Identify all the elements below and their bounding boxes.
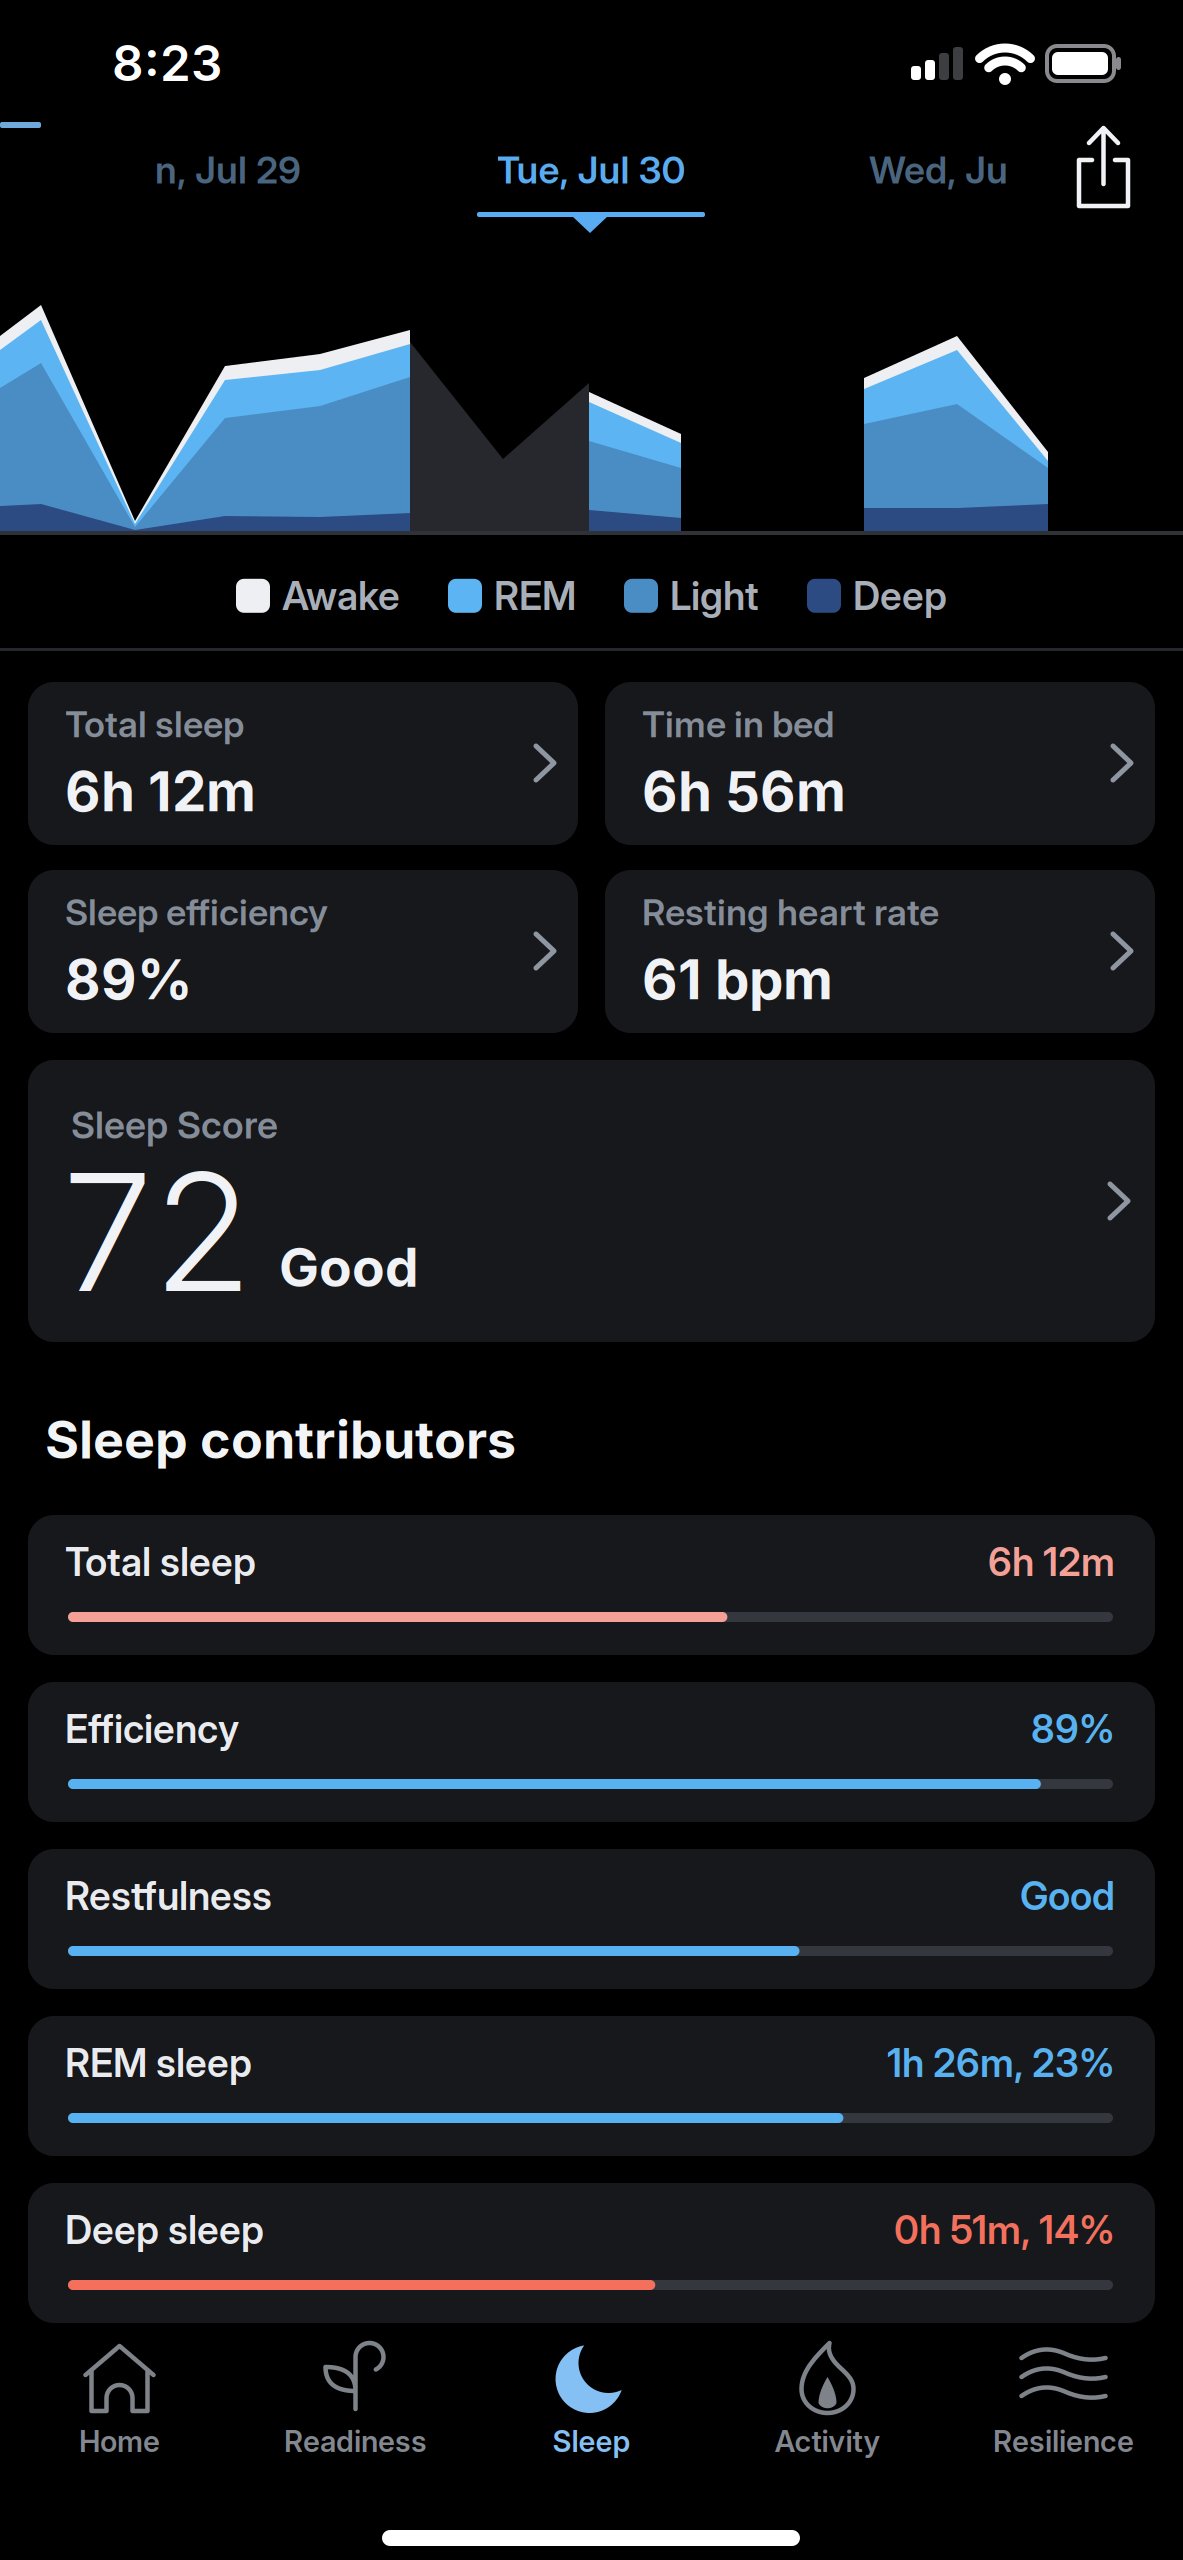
button[interactable]: Activity	[709, 2341, 945, 2459]
staticText: Light	[670, 573, 759, 619]
button[interactable]: Home	[1, 2341, 237, 2459]
button[interactable]: Total sleep	[28, 682, 578, 845]
staticText: 6h 56m	[642, 759, 846, 823]
staticText: Sleep Score	[71, 1103, 278, 1147]
button[interactable]: Wed, Ju	[869, 148, 1008, 192]
staticText: REM sleep	[65, 2040, 252, 2086]
staticText: Time in bed	[642, 703, 834, 745]
staticText: 1h 26m, 23%	[887, 2040, 1115, 2086]
staticText: 72	[62, 1136, 253, 1328]
staticText: 6h 12m	[65, 759, 256, 823]
staticText: Good	[279, 1236, 419, 1299]
button[interactable]: Restfulness	[28, 1849, 1155, 1989]
staticText: 8:23	[112, 34, 222, 92]
staticText: Deep sleep	[65, 2207, 264, 2253]
staticText: Wed, Ju	[869, 148, 1008, 192]
staticText: Resting heart rate	[642, 891, 939, 933]
staticText: 6h 12m	[988, 1539, 1115, 1585]
staticText: Sleep efficiency	[65, 891, 328, 933]
button[interactable]: Deep sleep	[28, 2183, 1155, 2323]
button[interactable]: Sleep efficiency	[28, 870, 578, 1033]
staticText: Resilience	[993, 2424, 1134, 2459]
staticText: 89%	[1031, 1706, 1115, 1752]
staticText: 89%	[65, 947, 193, 1011]
button[interactable]: Resilience	[945, 2341, 1181, 2459]
button[interactable]: Sleep	[473, 2341, 709, 2459]
button[interactable]: n, Jul 29	[68, 148, 388, 192]
staticText: Total sleep	[65, 1539, 256, 1585]
staticText: Efficiency	[65, 1706, 239, 1752]
staticText: n, Jul 29	[155, 148, 301, 192]
button[interactable]: Resting heart rate	[605, 870, 1155, 1033]
button[interactable]	[1073, 124, 1137, 212]
staticText: 0h 51m, 14%	[894, 2207, 1115, 2253]
button[interactable]: Efficiency	[28, 1682, 1155, 1822]
staticText: Activity	[774, 2424, 880, 2459]
button[interactable]: Sleep Score	[28, 1060, 1155, 1342]
staticText: Tue, Jul 30	[496, 148, 685, 192]
staticText: Sleep	[552, 2424, 630, 2459]
button[interactable]: Time in bed	[605, 682, 1155, 845]
button[interactable]: Tue, Jul 30	[431, 148, 751, 192]
staticText: Good	[1020, 1873, 1115, 1919]
button[interactable]: Readiness	[237, 2341, 473, 2459]
staticText: REM	[494, 573, 576, 619]
staticText: Home	[79, 2424, 160, 2459]
staticText: Readiness	[284, 2424, 427, 2459]
staticText: Deep	[853, 573, 947, 619]
staticText: 61 bpm	[642, 947, 833, 1011]
button[interactable]: Total sleep	[28, 1515, 1155, 1655]
staticText: Sleep contributors	[45, 1409, 516, 1470]
button[interactable]: REM sleep	[28, 2016, 1155, 2156]
staticText: Awake	[282, 573, 400, 619]
staticText: Total sleep	[65, 703, 244, 745]
staticText: Restfulness	[65, 1873, 272, 1919]
